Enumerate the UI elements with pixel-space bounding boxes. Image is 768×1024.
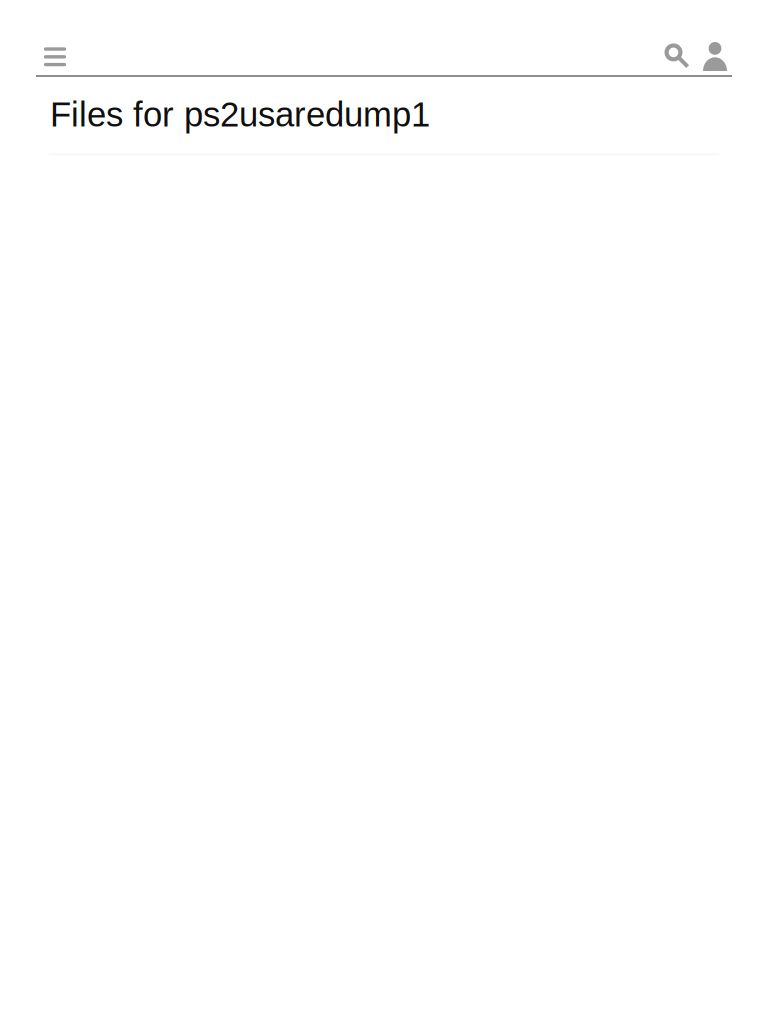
- button[interactable]: Account: [696, 35, 734, 75]
- button[interactable]: Menu: [36, 35, 74, 75]
- button[interactable]: Search: [658, 35, 696, 75]
- staticText: Files for ps2usaredump1: [50, 95, 430, 134]
